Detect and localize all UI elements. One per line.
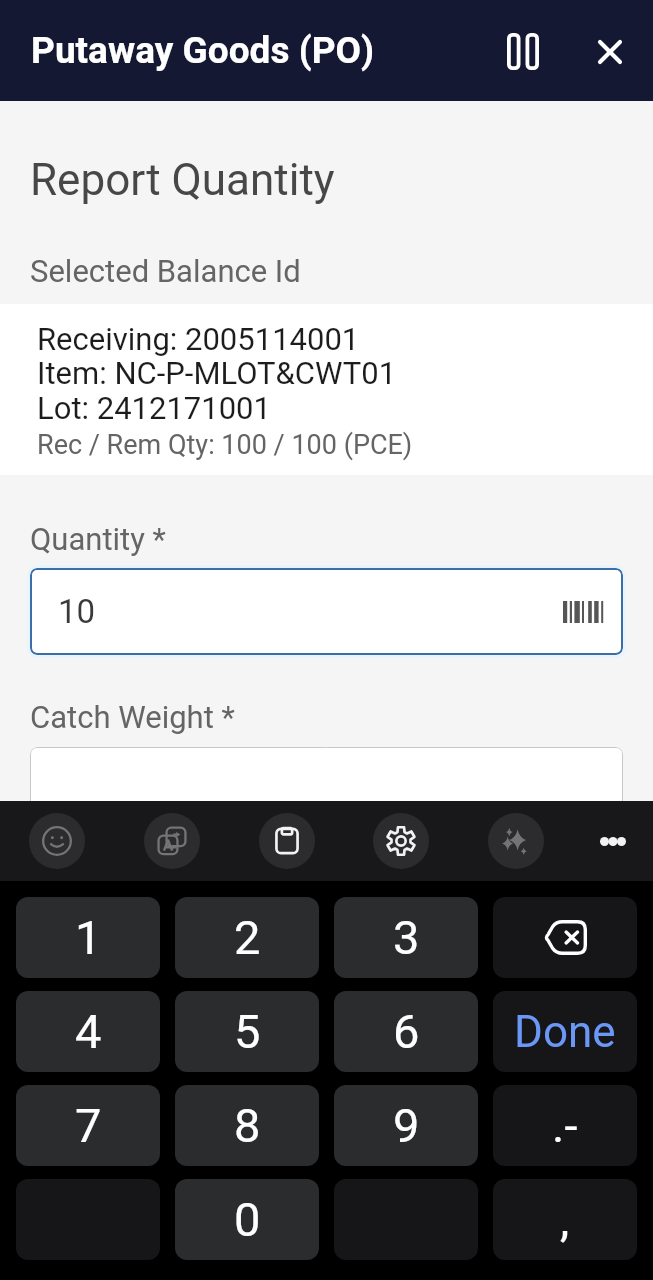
staticText: 4 — [75, 1004, 102, 1059]
staticText: Putaway Goods (PO) — [31, 29, 375, 72]
button[interactable]: Close — [574, 16, 646, 88]
button[interactable]: 6 — [334, 991, 478, 1072]
button[interactable]: AI suggestions — [488, 813, 544, 869]
staticText: 10 — [58, 592, 96, 631]
button[interactable]: Translate — [144, 813, 200, 869]
staticText: , — [560, 1192, 570, 1247]
staticText: 3 — [393, 910, 420, 965]
staticText: .- — [552, 1098, 578, 1153]
button[interactable] — [30, 747, 623, 801]
button[interactable]: 2 — [175, 897, 319, 978]
staticText: Rec / Rem Qty: 100 / 100 (PCE) — [37, 429, 413, 461]
staticText: Item: NC-P-MLOT&CWT01 — [37, 355, 397, 391]
button[interactable]: 8 — [175, 1085, 319, 1166]
button[interactable]: Settings — [373, 813, 429, 869]
button[interactable]: Split view — [487, 15, 559, 87]
button[interactable]: Clipboard — [259, 813, 315, 869]
button[interactable]: 7 — [16, 1085, 160, 1166]
button[interactable]: 1 — [16, 897, 160, 978]
button[interactable]: , — [493, 1179, 637, 1260]
staticText: 6 — [393, 1004, 420, 1059]
button[interactable]: 0 — [175, 1179, 319, 1260]
staticText: 5 — [234, 1004, 261, 1059]
staticText: Quantity * — [30, 521, 166, 557]
button[interactable]: 5 — [175, 991, 319, 1072]
staticText: 1 — [75, 910, 102, 965]
staticText: 0 — [234, 1192, 261, 1247]
staticText: Done — [514, 1006, 616, 1058]
staticText: Report Quantity — [30, 154, 335, 206]
staticText: Receiving: 2005114001 — [37, 321, 360, 357]
button[interactable]: More options — [585, 813, 641, 869]
staticText: 9 — [393, 1098, 420, 1153]
button[interactable]: 4 — [16, 991, 160, 1072]
staticText: 7 — [75, 1098, 102, 1153]
button[interactable]: .- — [493, 1085, 637, 1166]
button[interactable]: Emoji — [29, 813, 85, 869]
staticText: 2 — [234, 910, 261, 965]
staticText: Catch Weight * — [30, 699, 235, 735]
button[interactable]: 3 — [334, 897, 478, 978]
staticText: 8 — [234, 1098, 261, 1153]
button[interactable]: 10 — [30, 568, 623, 655]
button[interactable]: Backspace — [493, 897, 637, 978]
staticText: Lot: 2412171001 — [37, 390, 271, 426]
button[interactable]: Done — [493, 991, 637, 1072]
button[interactable]: 9 — [334, 1085, 478, 1166]
staticText: Selected Balance Id — [30, 253, 301, 289]
